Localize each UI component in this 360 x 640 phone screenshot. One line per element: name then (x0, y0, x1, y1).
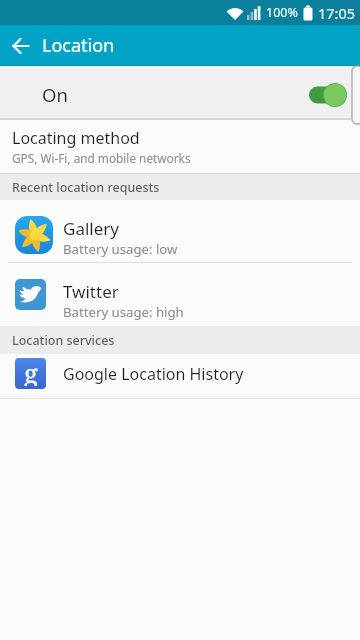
staticText: Battery usage: high (63, 303, 184, 321)
button[interactable] (309, 80, 349, 110)
button[interactable]: Twitter (0, 263, 360, 326)
staticText: Location (42, 33, 115, 58)
staticText: g (24, 358, 38, 386)
staticText: On (42, 82, 68, 107)
staticText: Locating method (12, 127, 140, 149)
button[interactable]: On (0, 66, 360, 118)
staticText: Battery usage: low (63, 240, 178, 258)
staticText: Gallery (63, 217, 119, 240)
button[interactable]: g (0, 354, 360, 398)
button[interactable] (0, 25, 42, 66)
button[interactable]: Locating method (0, 120, 360, 173)
staticText: GPS, Wi-Fi, and mobile networks (12, 150, 191, 166)
staticText: 17:05 (318, 3, 356, 23)
staticText: Recent location requests (12, 179, 160, 196)
button[interactable]: Gallery (0, 200, 360, 262)
staticText: Twitter (63, 280, 119, 303)
staticText: Location services (12, 332, 115, 349)
staticText: Google Location History (63, 363, 244, 385)
staticText: 100% (266, 4, 298, 21)
